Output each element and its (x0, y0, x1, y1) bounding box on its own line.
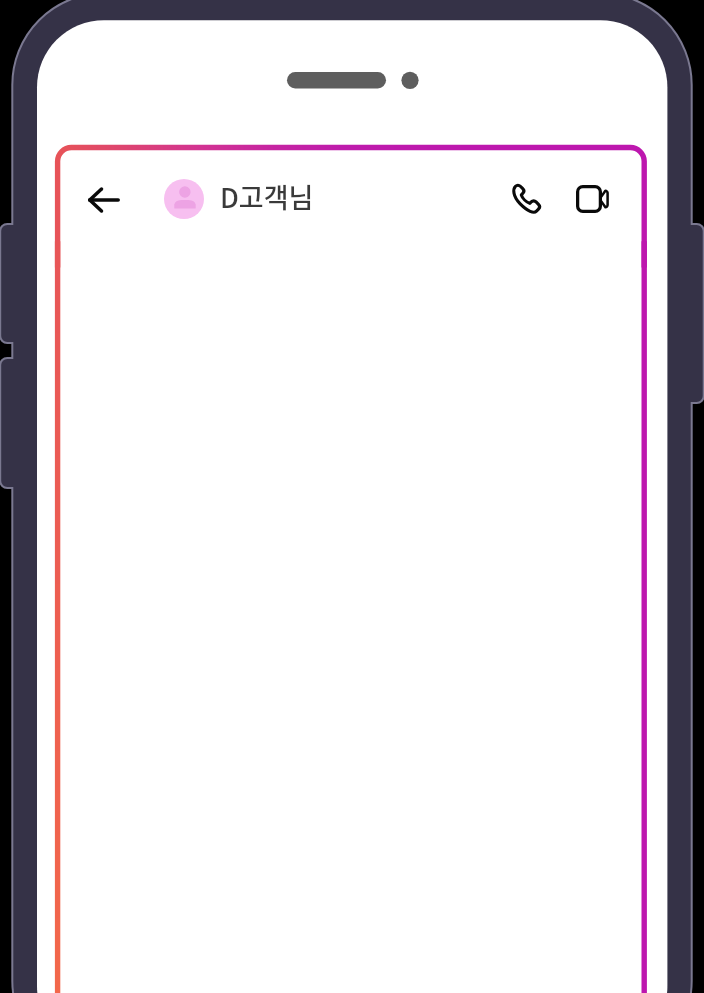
button[interactable]: Call (502, 175, 550, 223)
button[interactable]: Video call (569, 175, 617, 222)
staticText: D고객님 (220, 177, 314, 216)
button[interactable]: Back (80, 176, 128, 224)
